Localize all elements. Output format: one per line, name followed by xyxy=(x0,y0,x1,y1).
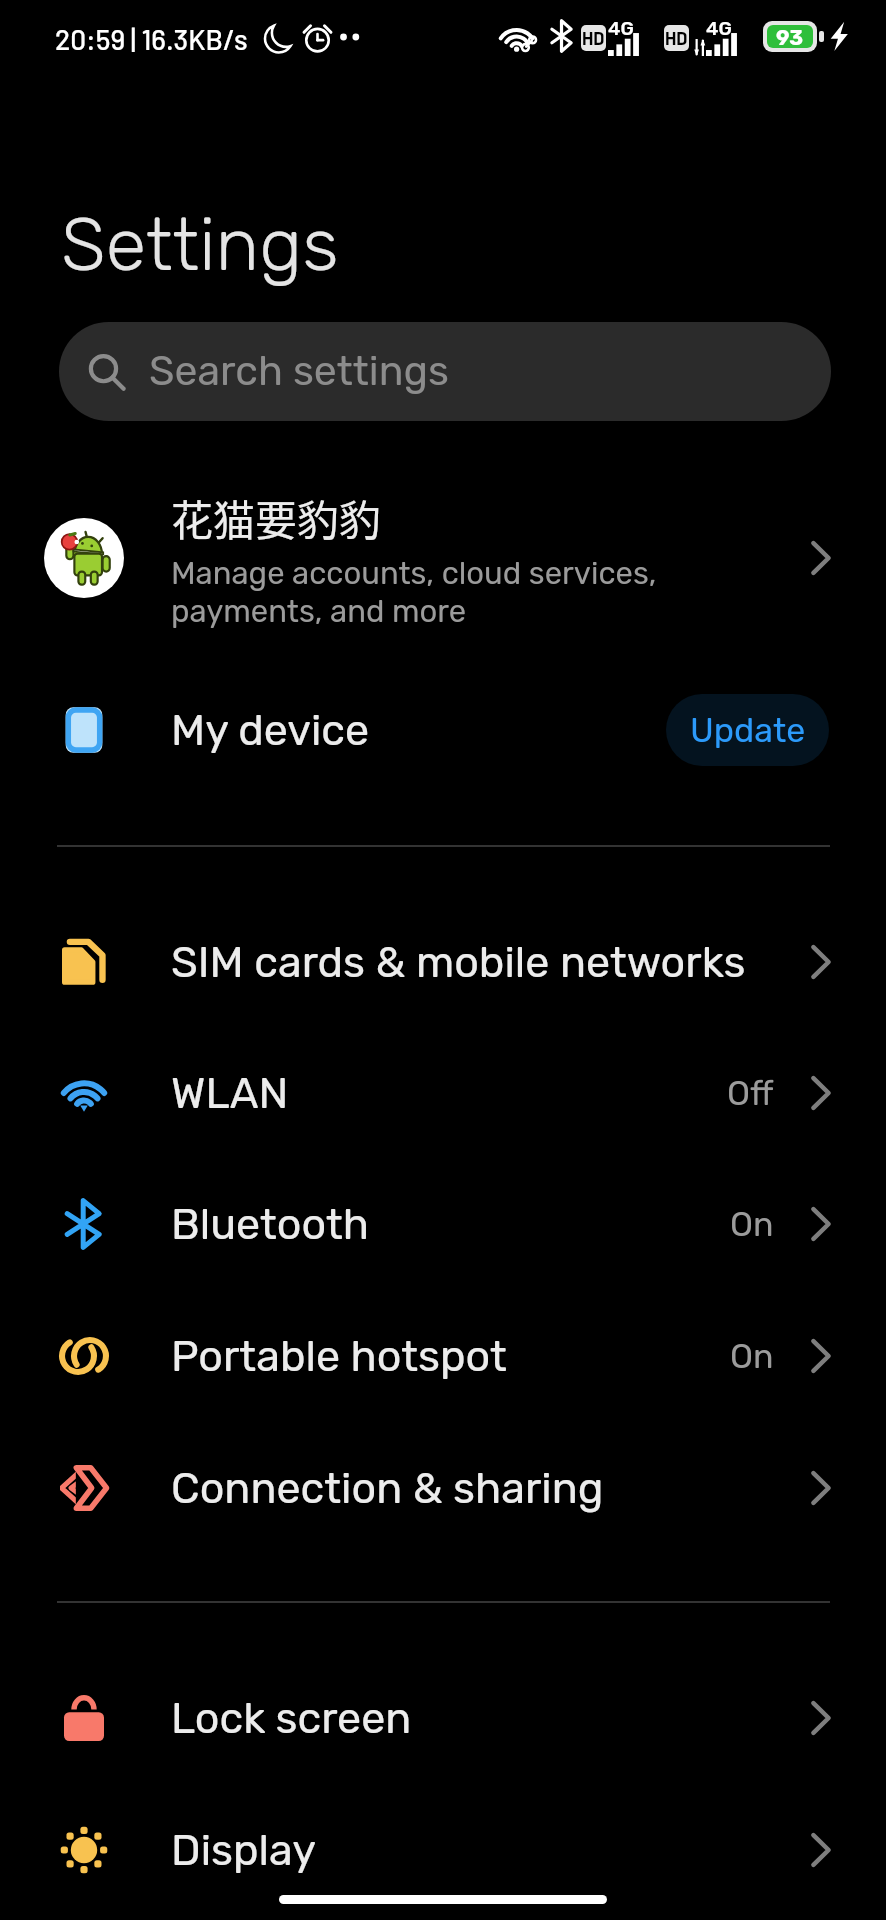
staticText: 93 xyxy=(776,25,804,48)
staticText: 20:59 | 16.3KB/s xyxy=(55,22,248,56)
button[interactable]: Search settings xyxy=(59,322,831,421)
staticText: HD xyxy=(665,27,688,49)
button[interactable]: WLAN xyxy=(0,1033,886,1153)
staticText: SIM cards & mobile networks xyxy=(171,937,746,988)
staticText: Display xyxy=(171,1825,316,1876)
staticText: On xyxy=(730,1336,774,1376)
button[interactable]: Connection & sharing xyxy=(0,1428,886,1548)
button[interactable]: My device xyxy=(0,665,886,795)
staticText: HD xyxy=(582,27,605,49)
staticText: Update xyxy=(690,710,806,750)
staticText: Bluetooth xyxy=(171,1199,369,1250)
staticText: Settings xyxy=(61,201,339,289)
button[interactable]: Bluetooth xyxy=(0,1164,886,1284)
staticText: 4G xyxy=(706,17,732,40)
staticText: Search settings xyxy=(149,347,449,396)
staticText: 4G xyxy=(608,17,634,40)
staticText: My device xyxy=(171,705,370,756)
staticText: Lock screen xyxy=(171,1693,412,1744)
button[interactable]: SIM cards & mobile networks xyxy=(0,902,886,1022)
button[interactable]: Portable hotspot xyxy=(0,1296,886,1416)
staticText: On xyxy=(730,1204,774,1244)
staticText: Connection & sharing xyxy=(171,1463,604,1514)
staticText: 花猫要豹豹 xyxy=(171,487,382,548)
button[interactable]: 花猫要豹豹 xyxy=(0,478,886,638)
button[interactable]: Update xyxy=(666,694,829,766)
button[interactable]: Display xyxy=(0,1790,886,1910)
staticText: Off xyxy=(727,1073,774,1113)
staticText: Manage accounts, cloud services, payment… xyxy=(171,555,657,630)
button[interactable]: Lock screen xyxy=(0,1658,886,1778)
staticText: Portable hotspot xyxy=(171,1331,507,1382)
staticText: WLAN xyxy=(171,1068,289,1119)
